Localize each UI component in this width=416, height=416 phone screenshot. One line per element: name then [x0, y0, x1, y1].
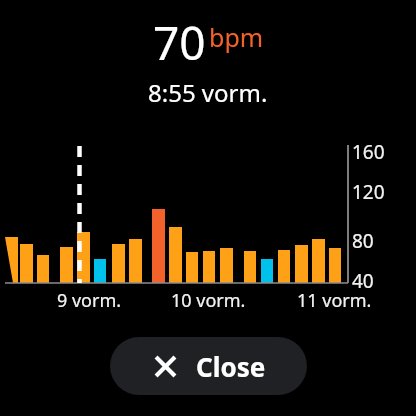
- staticText: 70: [153, 11, 206, 74]
- button[interactable]: Close: [110, 337, 307, 395]
- staticText: 8:55 vorm.: [148, 76, 268, 109]
- other: Close: [152, 353, 179, 380]
- staticText: 11 vorm.: [297, 288, 372, 313]
- staticText: 120: [352, 179, 385, 205]
- staticText: 10 vorm.: [171, 288, 246, 313]
- staticText: 80: [352, 228, 374, 254]
- staticText: 160: [352, 139, 385, 165]
- staticText: 9 vorm.: [57, 288, 122, 313]
- staticText: 40: [352, 268, 374, 294]
- staticText: bpm: [209, 20, 264, 54]
- staticText: Close: [196, 349, 266, 384]
